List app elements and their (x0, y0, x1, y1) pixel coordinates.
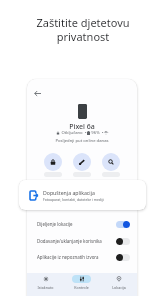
staticText: 96% (91, 130, 100, 136)
button[interactable]: Back (32, 88, 43, 99)
staticText: Posljednji put online danas (27, 138, 137, 144)
staticText: Dodavanje/uklanjanje korisnika (37, 238, 116, 244)
staticText: Istaknuto (37, 285, 54, 290)
button[interactable]: Istaknuto (27, 273, 63, 296)
staticText: Dijeljenje lokacije (37, 221, 116, 227)
staticText: Kontrole (74, 285, 89, 290)
staticText: Fotoaparat, kontakti, datoteke i mediji (43, 197, 104, 202)
button[interactable]: Dopuštenja aplikacija (19, 180, 146, 210)
button[interactable]: Aplikacije iz nepoznatih izvora (27, 249, 137, 265)
staticText: Lokacija (112, 285, 126, 290)
staticText: Pixel 6a (27, 122, 137, 132)
staticText: Zaštitite djetetovu privatnost (0, 15, 166, 45)
staticText: Otključano (61, 130, 83, 136)
staticText: • (83, 130, 87, 136)
button[interactable]: Find device (102, 153, 120, 171)
staticText: Aplikacije iz nepoznatih izvora (37, 254, 116, 260)
button[interactable]: Lock device (44, 153, 62, 171)
button[interactable]: Dodavanje/uklanjanje korisnika (27, 233, 137, 249)
button[interactable]: Lokacija (100, 273, 137, 296)
button[interactable]: Dijeljenje lokacije (27, 215, 137, 233)
button[interactable]: Kontrole (63, 273, 100, 296)
button[interactable]: Ring device (73, 153, 91, 171)
staticText: Dopuštenja aplikacija (43, 189, 95, 196)
staticText: • (100, 130, 104, 136)
